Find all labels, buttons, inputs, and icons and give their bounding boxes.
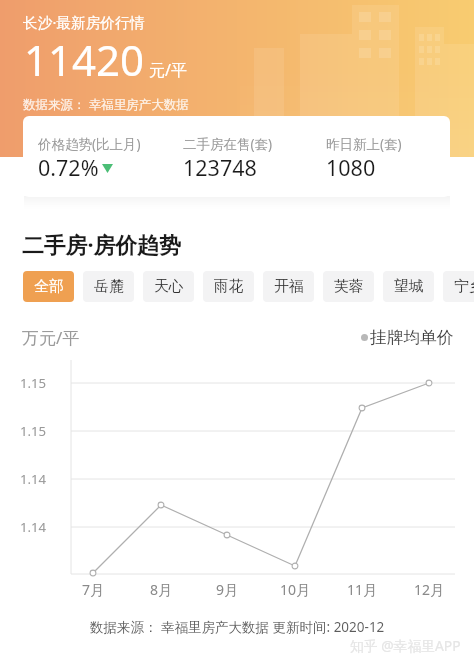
staticText: 1.15 [20, 422, 47, 440]
staticText: 万元/平 [22, 326, 80, 349]
staticText: 知乎 @幸福里APP [350, 636, 461, 655]
staticText: 0.72% [38, 153, 99, 182]
staticText: 10月 [280, 580, 311, 599]
staticText: 数据来源： 幸福里房产大数据 [23, 96, 189, 113]
button[interactable]: 望城 [383, 271, 434, 302]
staticText: 元/平 [149, 59, 187, 81]
button[interactable]: 全部 [23, 271, 74, 302]
staticText: 二手房·房价趋势 [22, 230, 181, 260]
button[interactable]: 价格趋势(比上月) [23, 116, 450, 197]
staticText: 1.14 [20, 518, 47, 536]
staticText: 雨花 [214, 277, 244, 296]
button[interactable]: 天心 [143, 271, 194, 302]
staticText: 昨日新上(套) [326, 135, 402, 153]
staticText: 挂牌均单价 [370, 327, 454, 348]
staticText: 望城 [394, 277, 424, 296]
staticText: 宁乡 [454, 277, 474, 296]
staticText: 1.14 [20, 470, 47, 488]
staticText: 芙蓉 [334, 277, 364, 296]
staticText: 开福 [274, 277, 304, 296]
staticText: 岳麓 [94, 277, 124, 296]
staticText: 11420 [24, 31, 145, 88]
staticText: 1080 [326, 153, 376, 182]
staticText: 7月 [82, 580, 105, 599]
staticText: 11月 [347, 580, 378, 599]
button[interactable]: 岳麓 [83, 271, 134, 302]
staticText: 价格趋势(比上月) [38, 135, 141, 153]
staticText: 长沙·最新房价行情 [23, 12, 145, 32]
staticText: 12月 [414, 580, 445, 599]
staticText: 天心 [154, 277, 184, 296]
staticText: 全部 [34, 277, 64, 296]
staticText: 1.15 [20, 374, 47, 392]
staticText: 9月 [216, 580, 239, 599]
staticText: 123748 [183, 153, 257, 182]
button[interactable]: 雨花 [203, 271, 254, 302]
staticText: 二手房在售(套) [183, 135, 273, 153]
staticText: 8月 [150, 580, 173, 599]
button[interactable]: 芙蓉 [323, 271, 374, 302]
button[interactable]: 开福 [263, 271, 314, 302]
button[interactable]: 宁乡 [443, 271, 474, 302]
staticText: 数据来源： 幸福里房产大数据 更新时间: 2020-12 [90, 618, 385, 636]
